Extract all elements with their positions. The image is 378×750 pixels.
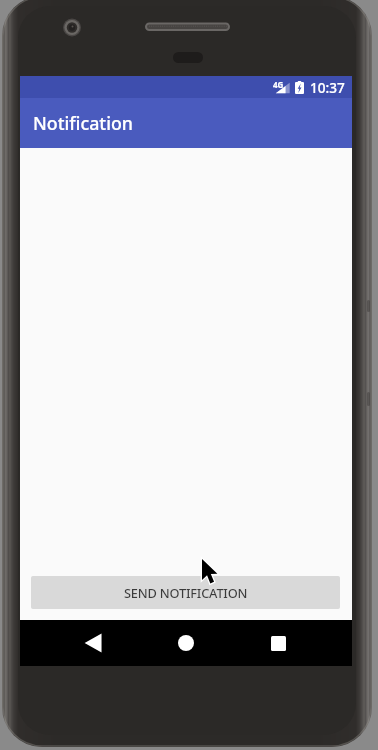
button[interactable]: Home [165,622,207,664]
button[interactable]: Back [72,622,114,664]
button[interactable]: SEND NOTIFICATION [31,576,340,609]
button[interactable]: Recent apps [257,622,299,664]
staticText: SEND NOTIFICATION [124,584,248,601]
staticText: 4G [273,79,284,90]
staticText: 10:37 [310,78,345,97]
staticText: Notification [33,111,134,135]
